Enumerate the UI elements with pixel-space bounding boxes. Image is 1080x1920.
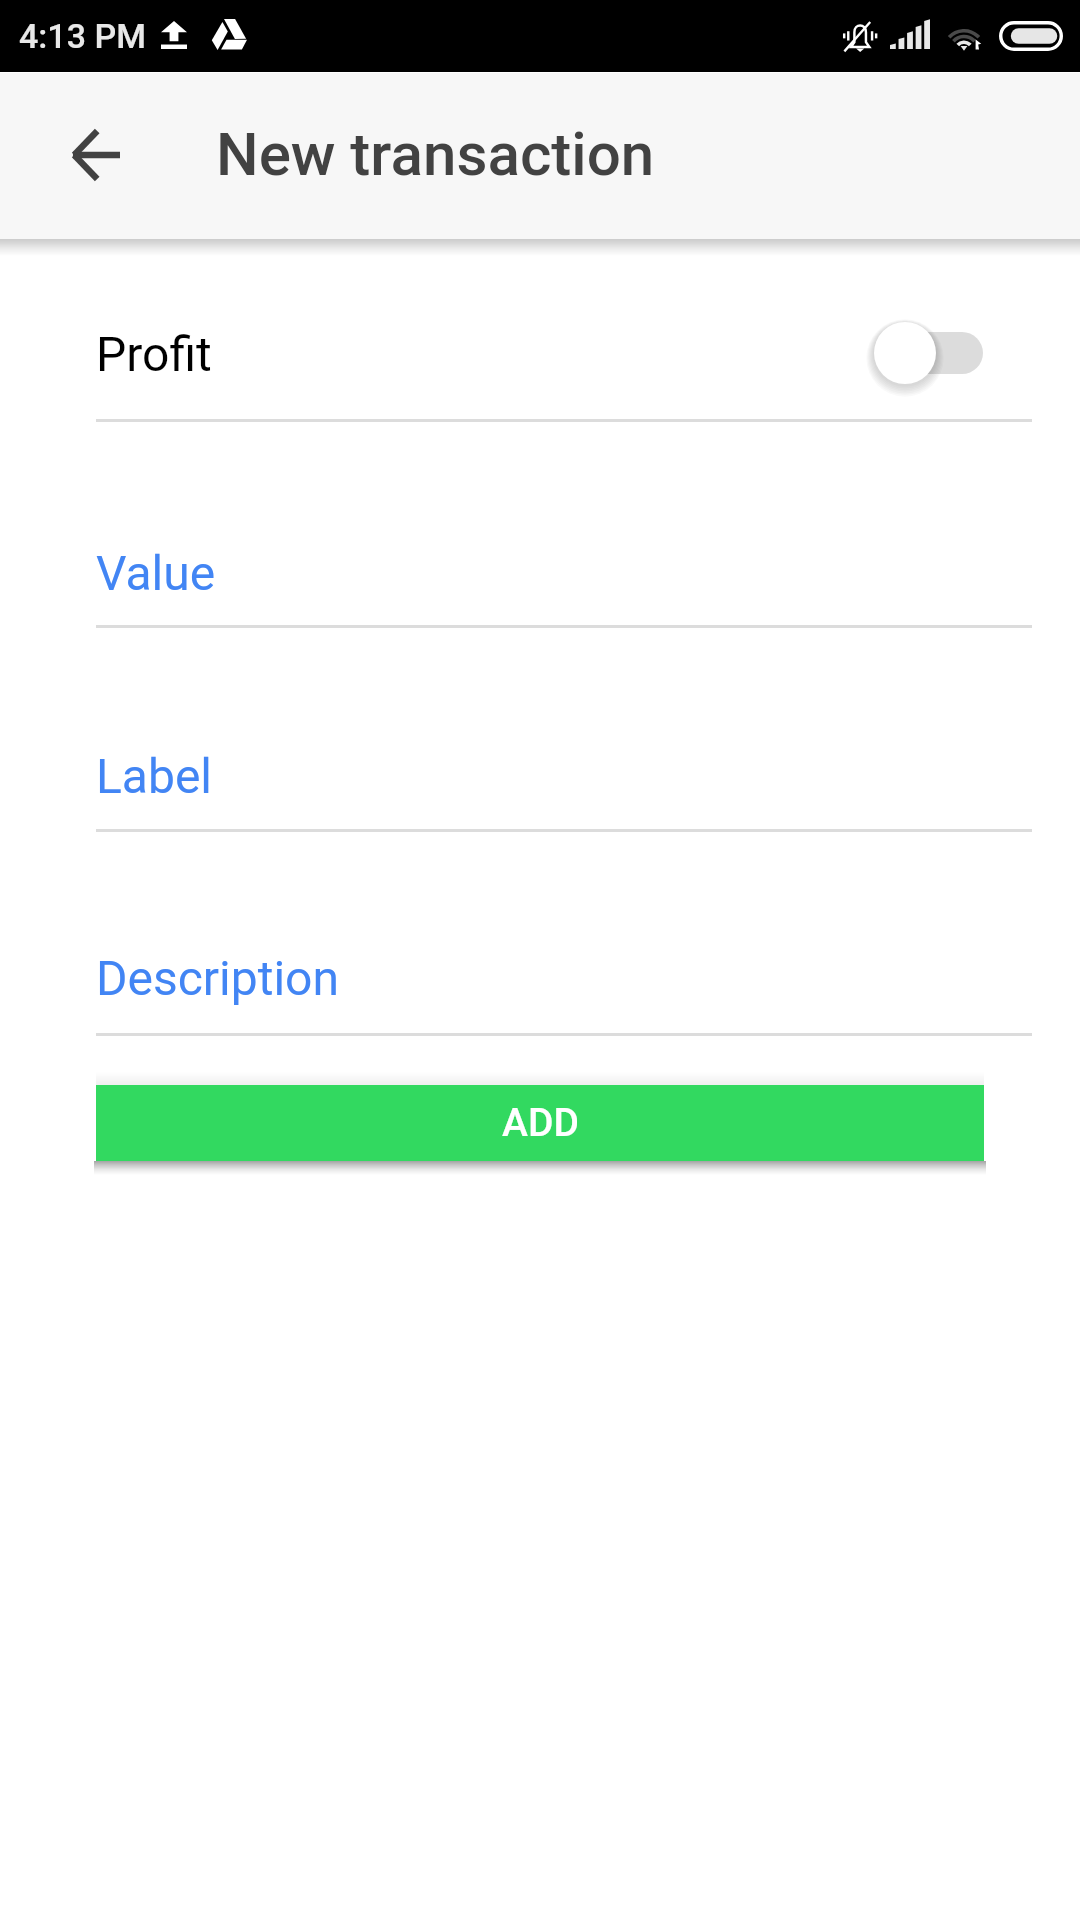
button[interactable]: ADD [96, 1085, 984, 1161]
button[interactable]: Profit [96, 300, 1032, 422]
staticText: 4:13 PM [19, 16, 146, 56]
staticText: ADD [502, 1100, 579, 1146]
button[interactable]: Profit switch [854, 300, 1024, 406]
staticText: Label [96, 748, 213, 804]
staticText: New transaction [216, 119, 655, 189]
staticText: Description [96, 950, 339, 1006]
button[interactable]: Back [48, 107, 144, 203]
button[interactable]: Label [96, 722, 1032, 832]
staticText: Value [96, 545, 216, 601]
button[interactable]: Value [96, 519, 1032, 628]
button[interactable]: Description [96, 924, 1032, 1036]
staticText: Profit [96, 326, 212, 382]
